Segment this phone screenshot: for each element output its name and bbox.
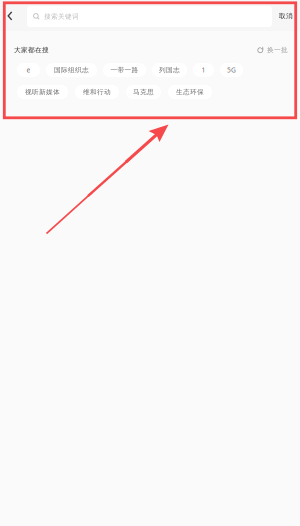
button[interactable]: e <box>17 63 40 77</box>
button[interactable]: 视听新媒体 <box>17 85 68 99</box>
staticText: 搜索关键词 <box>44 12 79 21</box>
button[interactable]: 国际组织志 <box>46 63 97 77</box>
staticText: 大家都在搜 <box>14 46 49 54</box>
staticText: 取消 <box>279 12 293 20</box>
staticText: 一带一路 <box>110 66 138 74</box>
button[interactable]: 维和行动 <box>75 85 119 99</box>
button[interactable]: Back <box>3 8 17 24</box>
staticText: 列国志 <box>159 66 180 74</box>
button[interactable]: 一带一路 <box>103 63 146 77</box>
button[interactable]: 马克思 <box>126 85 161 99</box>
staticText: 视听新媒体 <box>25 88 60 96</box>
staticText: 国际组织志 <box>54 66 89 74</box>
button[interactable]: 生态环保 <box>168 85 212 99</box>
button[interactable]: 换一批 <box>257 46 288 54</box>
button[interactable]: 搜索关键词 <box>27 6 272 27</box>
button[interactable]: 5G <box>220 63 243 77</box>
button[interactable]: 1 <box>193 63 214 77</box>
staticText: 马克思 <box>133 88 154 96</box>
staticText: 1 <box>201 66 205 74</box>
staticText: 生态环保 <box>176 88 204 96</box>
staticText: 换一批 <box>267 46 288 54</box>
staticText: e <box>26 66 30 74</box>
staticText: 5G <box>227 66 236 74</box>
staticText: 维和行动 <box>83 88 111 96</box>
button[interactable]: 取消 <box>276 9 296 23</box>
button[interactable]: 列国志 <box>152 63 187 77</box>
